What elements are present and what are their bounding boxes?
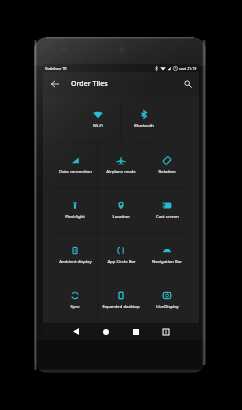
staticText: Bluetooth: [134, 123, 154, 129]
button[interactable]: Back: [61, 323, 91, 340]
button[interactable]: LiveDisplay: [144, 278, 190, 323]
staticText: saat 21:19: [179, 66, 197, 71]
staticText: Rotation: [158, 169, 176, 175]
staticText: Flashlight: [65, 214, 85, 220]
staticText: Expanded desktop: [102, 304, 140, 310]
staticText: App Circle Bar: [107, 259, 136, 265]
button[interactable]: Home: [91, 323, 121, 340]
staticText: Cast screen: [156, 214, 179, 220]
button[interactable]: Flashlight: [52, 188, 98, 233]
button[interactable]: Data connection: [52, 142, 98, 188]
staticText: Navigation Bar: [152, 259, 182, 265]
staticText: Sync: [70, 304, 80, 310]
button[interactable]: Recent apps: [121, 323, 151, 340]
button[interactable]: Ambient display: [52, 233, 98, 278]
button[interactable]: Wi-Fi: [75, 96, 121, 142]
button[interactable]: Rotation: [144, 142, 190, 188]
button[interactable]: Search: [177, 72, 199, 95]
button[interactable]: Sync: [52, 278, 98, 323]
staticText: Order Tiles: [71, 79, 108, 89]
staticText: LiveDisplay: [156, 304, 179, 310]
button[interactable]: Bluetooth: [121, 96, 167, 142]
button[interactable]: App Circle Bar: [98, 233, 144, 278]
staticText: Data connection: [59, 169, 92, 175]
staticText: Wi-Fi: [93, 123, 103, 129]
button[interactable]: Location: [98, 188, 144, 233]
button[interactable]: Airplane mode: [98, 142, 144, 188]
staticText: Vodafone TR: [45, 66, 67, 71]
button[interactable]: Back: [43, 72, 67, 95]
staticText: Airplane mode: [106, 169, 136, 175]
button[interactable]: Cast screen: [144, 188, 190, 233]
staticText: Ambient display: [59, 259, 92, 265]
button[interactable]: Split screen: [151, 323, 181, 340]
button[interactable]: Navigation Bar: [144, 233, 190, 278]
staticText: Location: [112, 214, 130, 220]
button[interactable]: Expanded desktop: [98, 278, 144, 323]
